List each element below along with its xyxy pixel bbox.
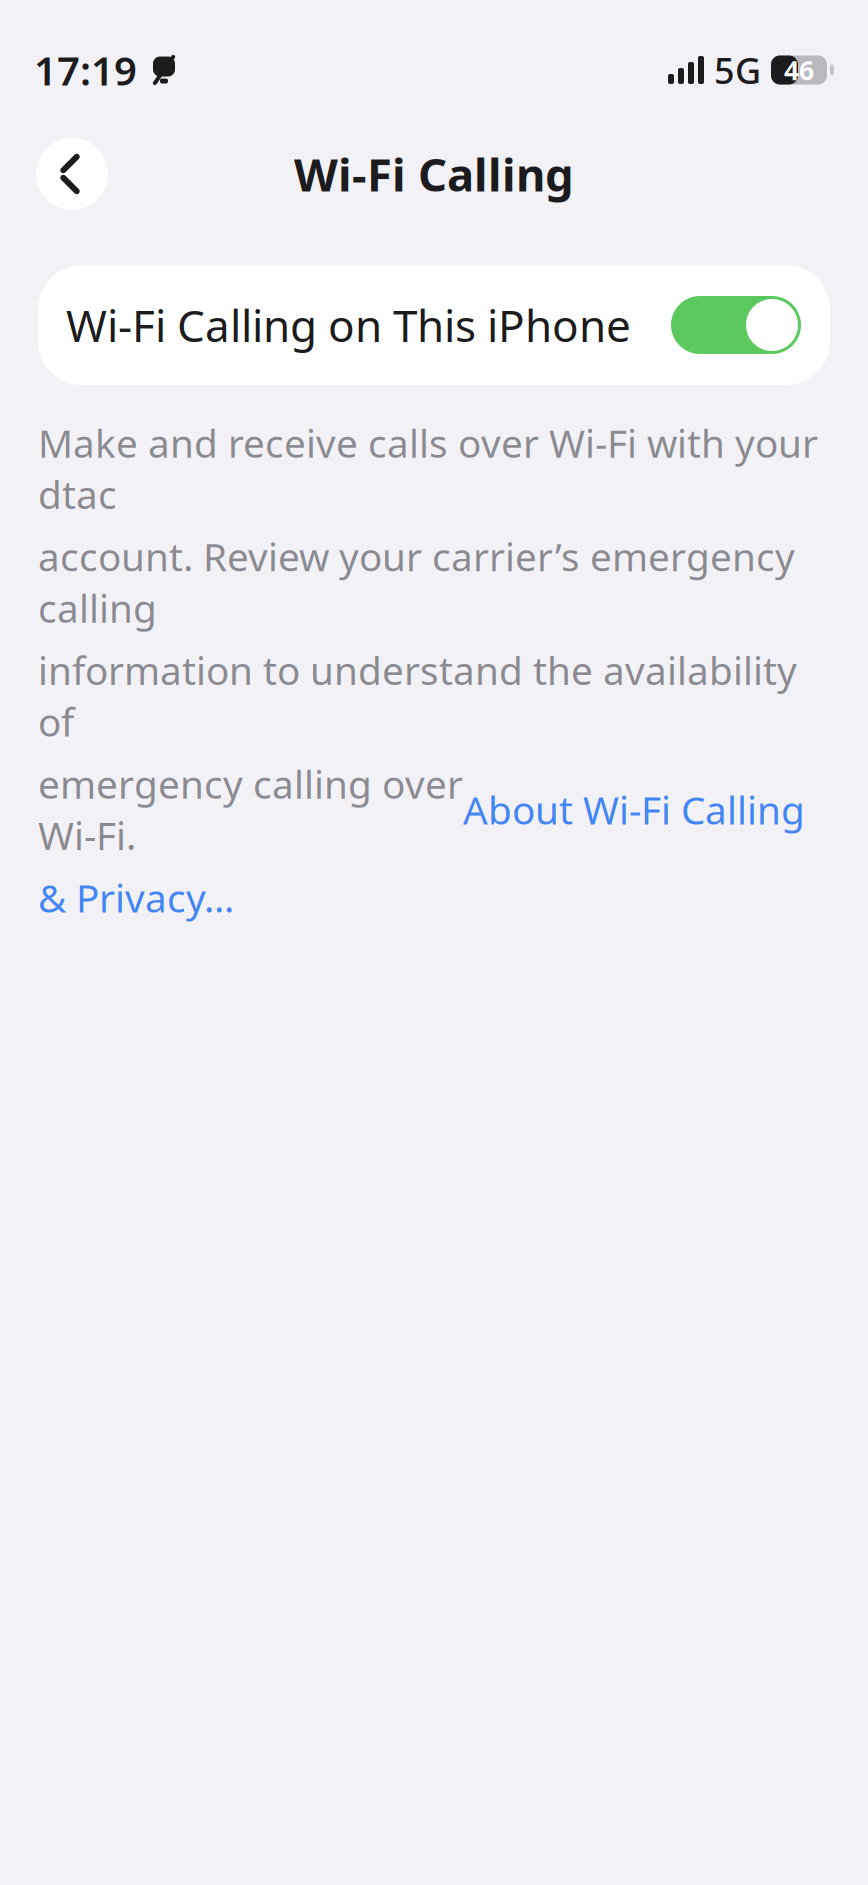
button[interactable]: & Privacy...: [38, 872, 234, 923]
button[interactable]: About Wi-Fi Calling: [463, 784, 805, 835]
button[interactable]: Back: [36, 138, 108, 210]
staticText: Make and receive calls over Wi-Fi with y…: [38, 417, 818, 520]
button[interactable]: Wi-Fi Calling on This iPhone: [38, 265, 830, 385]
staticText: 5G: [714, 46, 761, 94]
staticText: Wi-Fi Calling on This iPhone: [66, 296, 631, 354]
staticText: emergency calling over Wi-Fi.: [38, 758, 463, 861]
staticText: Wi-Fi Calling: [294, 144, 574, 204]
staticText: account. Review your carrier’s emergency…: [38, 531, 795, 633]
staticText: & Privacy...: [38, 872, 234, 923]
staticText: 46: [784, 52, 814, 88]
staticText: information to understand the availabili…: [38, 644, 797, 747]
staticText: About Wi-Fi Calling: [463, 784, 805, 835]
staticText: 17:19: [34, 43, 137, 96]
